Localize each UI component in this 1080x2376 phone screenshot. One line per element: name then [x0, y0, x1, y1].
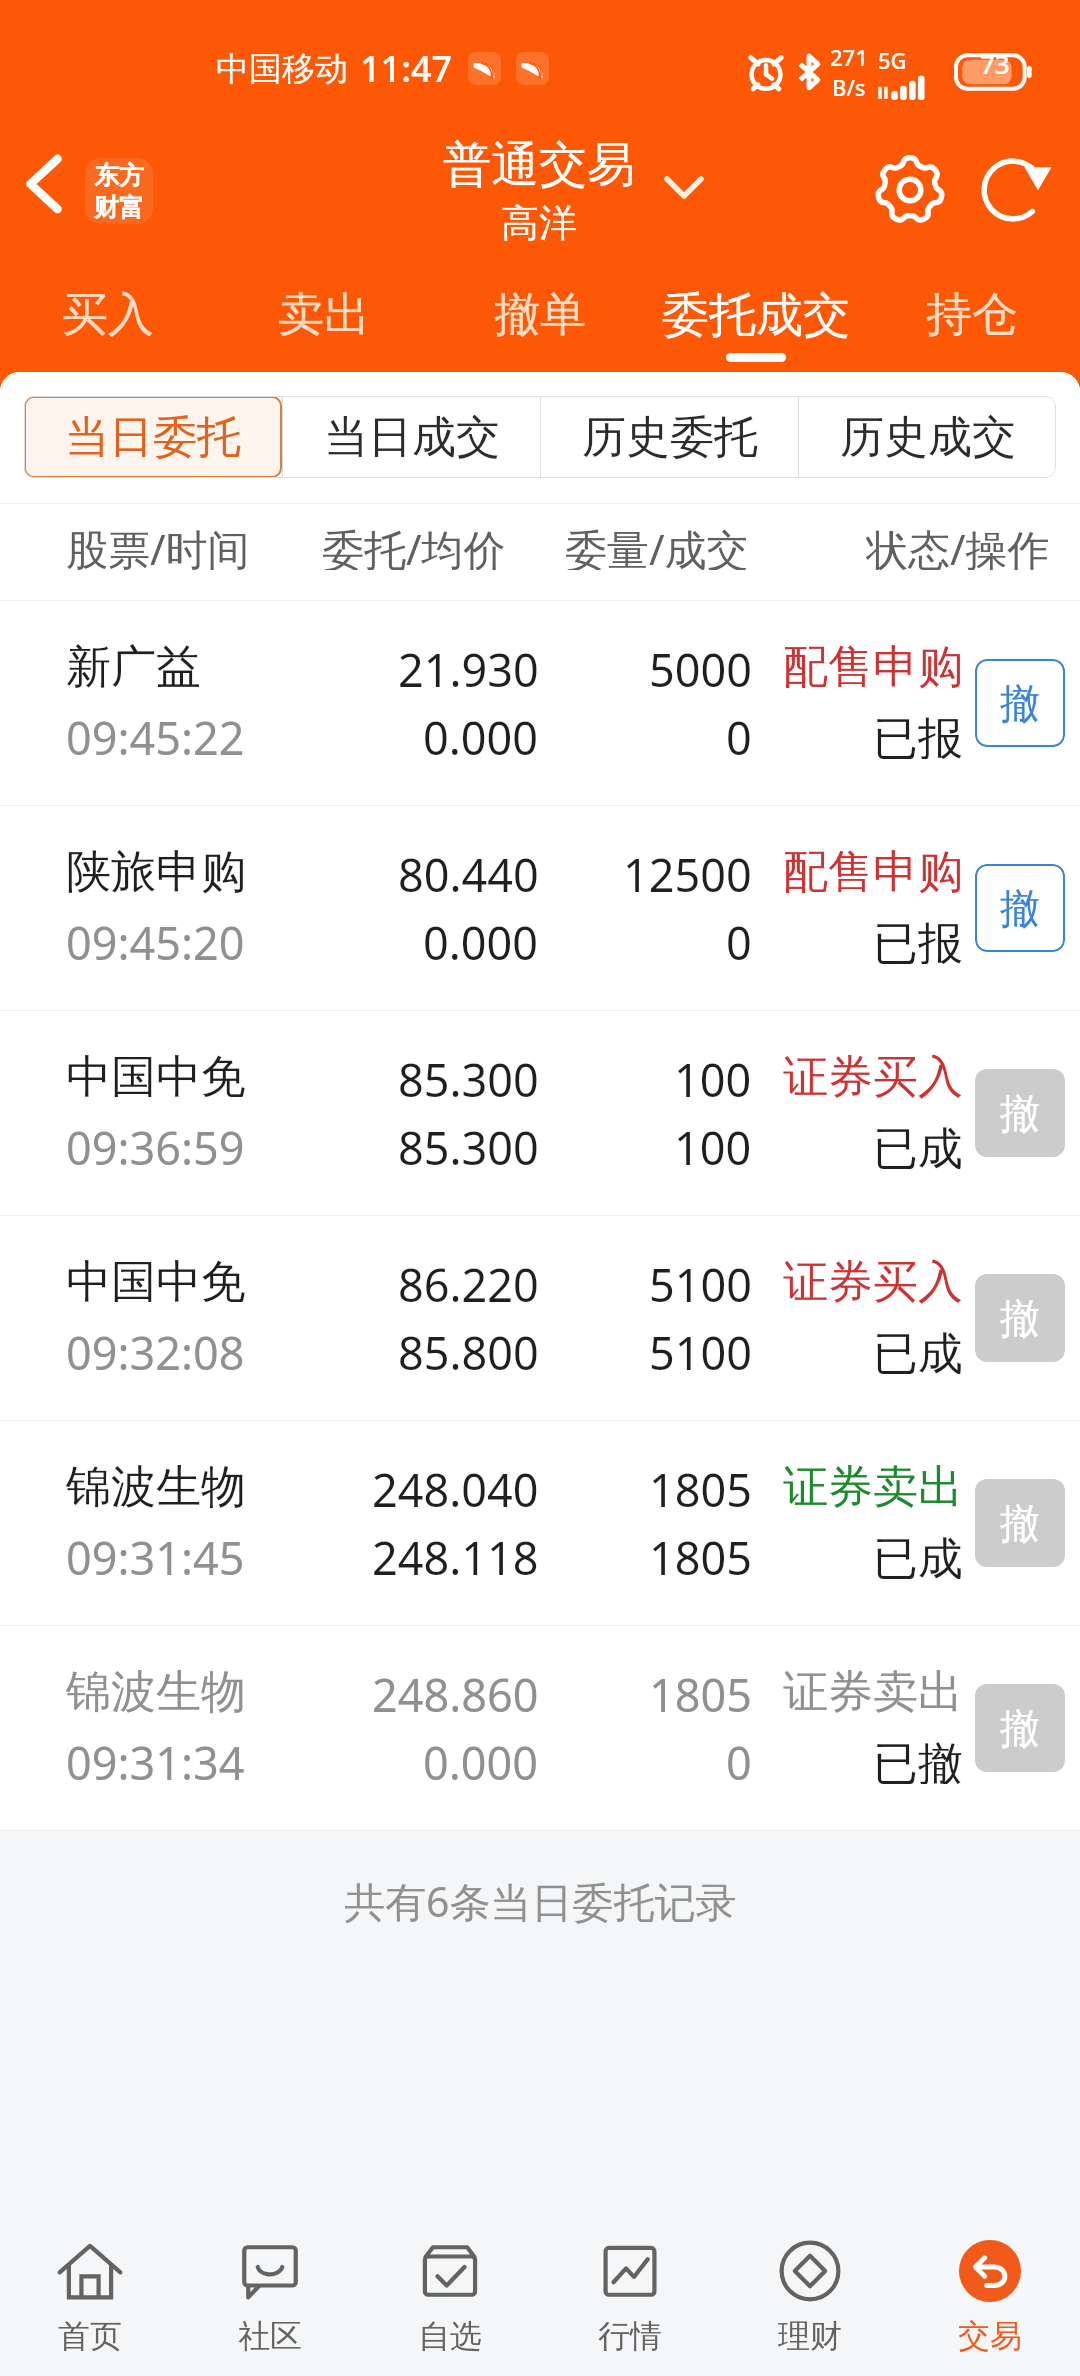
button[interactable]: 历史成交 — [799, 396, 1056, 478]
staticText: 锦波生物 — [66, 1459, 246, 1509]
button[interactable]: 卖出 — [216, 274, 432, 371]
button[interactable]: 撤单 — [432, 274, 648, 371]
button[interactable]: 东方 — [85, 158, 153, 224]
staticText: 0 — [726, 707, 752, 755]
staticText: 86.220 — [398, 1254, 539, 1304]
button[interactable]: 撤 — [975, 1479, 1065, 1567]
staticText: 5100 — [649, 1254, 752, 1304]
button[interactable]: 当日成交 — [283, 396, 540, 478]
staticText: 12500 — [623, 844, 752, 894]
staticText: 撤 — [1000, 1088, 1040, 1138]
staticText: 新广益 — [66, 639, 201, 689]
button[interactable]: 中国中免 — [0, 1216, 1080, 1421]
staticText: 当日委托 — [65, 410, 241, 465]
button[interactable]: 自选 — [360, 2238, 540, 2356]
button[interactable]: 撤 — [975, 1274, 1065, 1362]
button[interactable]: 首页 — [0, 2238, 180, 2356]
staticText: 100 — [674, 1049, 752, 1099]
staticText: 85.300 — [398, 1049, 539, 1099]
staticText: 1805 — [649, 1459, 752, 1509]
staticText: 已报 — [873, 711, 963, 759]
staticText: 中国中免 — [66, 1049, 246, 1099]
staticText: 中国移动 — [216, 48, 348, 90]
staticText: 5G — [878, 45, 907, 75]
staticText: 东方 — [94, 160, 144, 191]
button[interactable]: 行情 — [540, 2238, 720, 2356]
button[interactable]: 撤 — [975, 864, 1065, 952]
button[interactable]: 委托成交 — [648, 274, 864, 371]
staticText: 自选 — [418, 2316, 482, 2356]
staticText: 持仓 — [926, 286, 1018, 344]
staticText: 已成 — [873, 1326, 963, 1374]
staticText: 共有6条当日委托记录 — [344, 1873, 737, 1929]
button[interactable]: 当日委托 — [24, 396, 282, 478]
staticText: 09:31:34 — [66, 1732, 245, 1780]
staticText: 行情 — [598, 2316, 662, 2356]
staticText: 股票/时间 — [66, 520, 250, 570]
staticText: 财富 — [94, 192, 144, 223]
staticText: 09:31:45 — [66, 1527, 245, 1575]
staticText: 撤 — [1000, 1498, 1040, 1548]
staticText: 委托/均价 — [322, 520, 506, 570]
staticText: 买入 — [62, 286, 154, 344]
button[interactable]: 撤 — [975, 1069, 1065, 1157]
button[interactable]: 撤 — [975, 1684, 1065, 1772]
staticText: 11:47 — [360, 44, 453, 93]
staticText: 历史成交 — [840, 410, 1016, 465]
staticText: 已成 — [873, 1531, 963, 1579]
staticText: 21.930 — [398, 639, 539, 689]
staticText: 已撤 — [873, 1736, 963, 1784]
staticText: B/s — [832, 72, 866, 102]
button[interactable]: 理财 — [720, 2238, 900, 2356]
button[interactable]: 持仓 — [864, 274, 1080, 371]
staticText: 证券卖出 — [783, 1459, 963, 1509]
button[interactable]: 刷新 — [965, 142, 1061, 238]
staticText: 09:36:59 — [66, 1117, 245, 1165]
button[interactable]: 社区 — [180, 2238, 360, 2356]
staticText: 首页 — [58, 2316, 122, 2356]
staticText: 85.300 — [398, 1117, 539, 1165]
staticText: 80.440 — [398, 844, 539, 894]
button[interactable]: 交易 — [900, 2238, 1080, 2356]
button[interactable]: 陕旅申购 — [0, 806, 1080, 1011]
staticText: 高洋 — [501, 199, 577, 247]
button[interactable]: 锦波生物 — [0, 1421, 1080, 1626]
staticText: 证券买入 — [783, 1254, 963, 1304]
staticText: 248.118 — [372, 1527, 539, 1575]
button[interactable]: 中国中免 — [0, 1011, 1080, 1216]
staticText: 0.000 — [423, 1732, 539, 1780]
staticText: 已报 — [873, 916, 963, 964]
button[interactable]: 历史委托 — [541, 396, 798, 478]
button[interactable]: 撤 — [975, 659, 1065, 747]
staticText: 委托成交 — [662, 286, 850, 345]
button[interactable]: 买入 — [0, 274, 216, 371]
staticText: 状态/操作 — [866, 520, 1050, 570]
staticText: 271 — [830, 42, 868, 72]
staticText: 0 — [726, 912, 752, 960]
staticText: 中国中免 — [66, 1254, 246, 1304]
button[interactable]: 锦波生物 — [0, 1626, 1080, 1831]
button[interactable]: 普通交易 — [443, 135, 635, 247]
button[interactable]: 新广益 — [0, 601, 1080, 806]
staticText: 0 — [726, 1732, 752, 1780]
staticText: 社区 — [238, 2316, 302, 2356]
button[interactable]: 切换账户 — [650, 154, 718, 216]
staticText: 配售申购 — [783, 844, 963, 894]
staticText: 历史委托 — [582, 410, 758, 465]
staticText: 撤单 — [494, 286, 586, 344]
staticText: 0.000 — [423, 912, 539, 960]
staticText: 撤 — [1000, 1293, 1040, 1343]
staticText: 证券买入 — [783, 1049, 963, 1099]
staticText: 09:32:08 — [66, 1322, 245, 1370]
button[interactable]: 返回 — [6, 146, 82, 222]
staticText: 1805 — [649, 1527, 752, 1575]
staticText: 撤 — [1000, 1703, 1040, 1753]
staticText: 陕旅申购 — [66, 844, 246, 894]
staticText: 撤 — [1000, 678, 1040, 728]
button[interactable]: 设置 — [862, 142, 958, 238]
staticText: 普通交易 — [443, 135, 635, 195]
staticText: 09:45:22 — [66, 707, 245, 755]
staticText: 73 — [980, 46, 1010, 76]
staticText: 理财 — [778, 2316, 842, 2356]
staticText: 交易 — [958, 2316, 1022, 2356]
